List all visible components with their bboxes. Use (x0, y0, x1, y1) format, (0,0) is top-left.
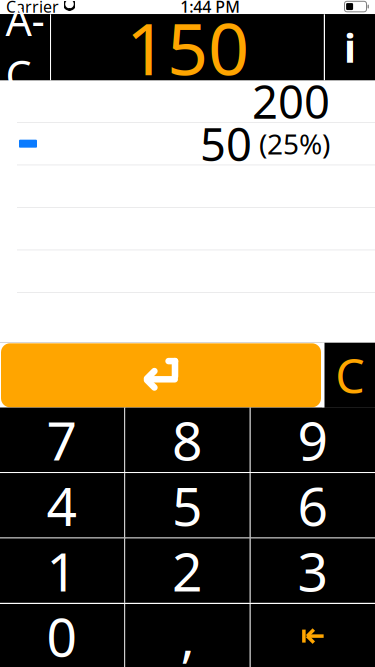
button[interactable]: 5 (125, 473, 250, 537)
button[interactable]: 9 (251, 408, 375, 472)
button[interactable]: Info (325, 14, 375, 80)
button[interactable]: C (324, 343, 375, 408)
button[interactable]: 7 (0, 408, 124, 472)
button[interactable]: 0 (0, 604, 124, 667)
staticText: 150 (126, 0, 249, 95)
staticText (59, 0, 63, 17)
button[interactable]: 2 (125, 539, 250, 603)
button[interactable]: Enter (0, 342, 322, 408)
button[interactable]: , (125, 604, 250, 667)
staticText: 200 (252, 71, 330, 131)
staticText: AC (5, 0, 44, 102)
button[interactable]: Backspace (251, 604, 375, 667)
staticText: C (335, 344, 364, 406)
button[interactable]: 1 (0, 539, 124, 603)
staticText: 5 (172, 470, 203, 541)
staticText: (25%) (252, 125, 330, 162)
staticText: 1 (47, 535, 78, 606)
staticText: 2 (172, 535, 203, 606)
staticText: Carrier (6, 0, 59, 17)
button[interactable]: 8 (125, 408, 250, 472)
button[interactable]: AC (0, 14, 50, 80)
staticText: 7 (47, 404, 78, 475)
button[interactable]: 4 (0, 473, 124, 537)
staticText: 3 (297, 535, 328, 606)
staticText: 6 (297, 470, 328, 541)
staticText: 8 (172, 404, 203, 475)
button[interactable]: 6 (251, 473, 375, 537)
staticText: 50 (200, 114, 252, 174)
button[interactable]: 3 (251, 539, 375, 603)
staticText: 1:44 PM (180, 0, 240, 17)
staticText: , (180, 601, 194, 667)
staticText: 9 (297, 404, 328, 475)
button[interactable]: 150 (51, 14, 324, 80)
staticText: 0 (47, 601, 78, 667)
staticText: i (344, 21, 356, 74)
staticText: 4 (47, 470, 78, 541)
